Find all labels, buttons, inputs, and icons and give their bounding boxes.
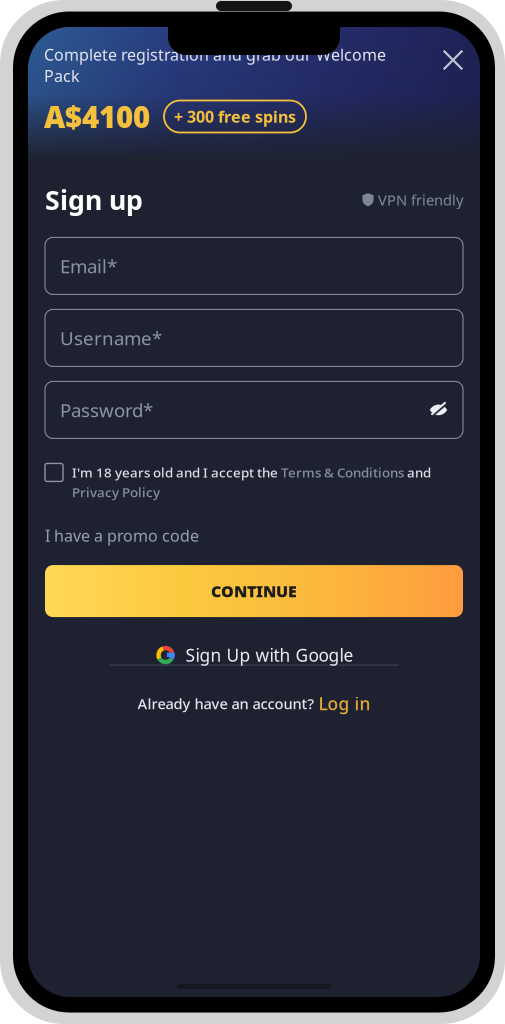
- staticText: I have a promo code: [45, 525, 199, 546]
- staticText: + 300 free spins: [174, 106, 296, 127]
- staticText: A$4100: [44, 97, 150, 136]
- staticText: Email*: [60, 253, 117, 278]
- staticText: I'm 18 years old and I accept the: [72, 463, 281, 481]
- staticText: Sign Up with Google: [185, 644, 353, 667]
- button[interactable]: Username*: [45, 309, 463, 366]
- staticText: Privacy Policy: [72, 483, 160, 501]
- staticText: and: [404, 463, 431, 481]
- button[interactable]: Email*: [45, 237, 463, 294]
- staticText: Sign up: [45, 182, 143, 217]
- button[interactable]: Sign Up with Google: [45, 640, 463, 670]
- button[interactable]: Password*: [45, 381, 463, 438]
- staticText: CONTINUE: [211, 580, 297, 602]
- button[interactable]: I have a promo code: [45, 525, 199, 546]
- staticText: Password*: [60, 397, 153, 422]
- staticText: Already have an account?: [137, 694, 318, 713]
- button[interactable]: I'm 18 years old and I accept the: [45, 463, 463, 501]
- staticText: Complete registration and grab our Welco…: [44, 44, 386, 86]
- staticText: Terms & Conditions: [281, 463, 404, 481]
- button[interactable]: Close: [437, 44, 469, 76]
- staticText: Username*: [60, 325, 162, 350]
- staticText: VPN friendly: [374, 190, 463, 209]
- staticText: Log in: [318, 692, 370, 715]
- button[interactable]: CONTINUE: [45, 565, 463, 617]
- button[interactable]: Log in: [318, 692, 370, 715]
